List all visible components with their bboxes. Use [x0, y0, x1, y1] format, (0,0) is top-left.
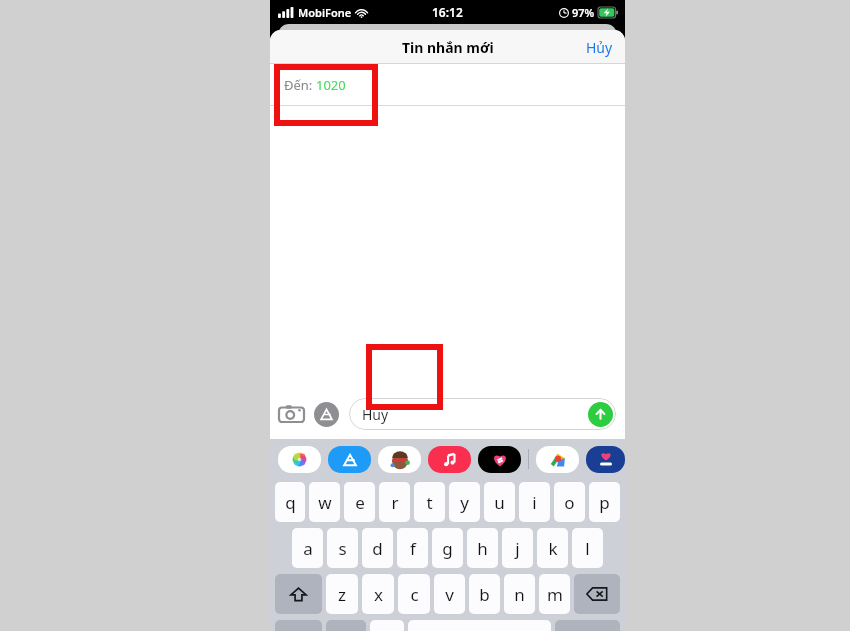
staticText: l	[585, 537, 590, 560]
staticText: r	[391, 491, 399, 514]
staticText: Tin nhắn mới	[402, 38, 494, 57]
staticText: t	[426, 491, 433, 514]
button[interactable]: f	[397, 528, 428, 568]
staticText: g	[442, 537, 453, 560]
staticText: y	[460, 491, 469, 514]
button[interactable]: Backspace	[574, 574, 620, 614]
button[interactable]: appstore	[328, 446, 371, 473]
staticText: f	[410, 537, 416, 560]
staticText: Đến:	[284, 76, 316, 94]
button[interactable]: Numbers	[275, 620, 322, 631]
staticText: Huy	[362, 405, 389, 424]
staticText: o	[564, 491, 575, 514]
staticText: 1020	[316, 76, 346, 94]
button[interactable]: c	[398, 574, 430, 614]
button[interactable]: Hủy	[574, 32, 625, 63]
button[interactable]: s	[327, 528, 358, 568]
button[interactable]: App Store	[314, 402, 339, 427]
button[interactable]: Dictation	[370, 620, 404, 631]
button[interactable]: k	[537, 528, 568, 568]
button[interactable]: Huy	[349, 398, 616, 430]
button[interactable]: p	[589, 482, 620, 522]
button[interactable]: Shift	[275, 574, 322, 614]
button[interactable]: u	[484, 482, 515, 522]
button[interactable]: Send	[588, 402, 613, 427]
button[interactable]: dấu cách	[408, 620, 551, 631]
staticText: m	[547, 583, 563, 606]
button[interactable]: o	[554, 482, 585, 522]
button[interactable]: h	[467, 528, 498, 568]
button[interactable]: maps	[536, 446, 579, 473]
button[interactable]: t	[414, 482, 445, 522]
button[interactable]: fitness	[478, 446, 521, 473]
button[interactable]: a	[292, 528, 323, 568]
staticText: x	[374, 583, 383, 606]
button[interactable]: m	[539, 574, 570, 614]
button[interactable]: y	[449, 482, 480, 522]
button[interactable]: photos	[278, 446, 321, 473]
button[interactable]: Language	[326, 620, 366, 631]
staticText: k	[548, 537, 558, 560]
button[interactable]: q	[275, 482, 305, 522]
button[interactable]: e	[344, 482, 375, 522]
staticText: 16:12	[432, 4, 463, 20]
staticText: b	[479, 583, 490, 606]
button[interactable]: w	[309, 482, 340, 522]
button[interactable]: v	[434, 574, 465, 614]
staticText: MobiFone	[298, 5, 352, 20]
button[interactable]: music	[428, 446, 471, 473]
staticText: e	[355, 491, 365, 514]
staticText: z	[338, 583, 346, 606]
staticText: j	[515, 537, 520, 560]
staticText: v	[445, 583, 454, 606]
staticText: p	[599, 491, 610, 514]
button[interactable]: Đến:	[270, 64, 625, 106]
button[interactable]: Enter	[555, 620, 620, 631]
button[interactable]: i	[519, 482, 550, 522]
button[interactable]: r	[379, 482, 410, 522]
staticText: u	[494, 491, 505, 514]
button[interactable]: b	[469, 574, 500, 614]
button[interactable]: lazada	[586, 446, 625, 473]
button[interactable]: d	[362, 528, 393, 568]
staticText: a	[303, 537, 313, 560]
button[interactable]: g	[432, 528, 463, 568]
staticText: h	[477, 537, 488, 560]
staticText: w	[318, 491, 332, 514]
button[interactable]: Camera	[279, 402, 304, 427]
button[interactable]: x	[362, 574, 394, 614]
button[interactable]: l	[572, 528, 603, 568]
staticText: 97%	[572, 5, 595, 20]
staticText: d	[372, 537, 383, 560]
button[interactable]: z	[326, 574, 358, 614]
staticText: q	[285, 491, 296, 514]
staticText: s	[338, 537, 347, 560]
button[interactable]: n	[504, 574, 535, 614]
button[interactable]: j	[502, 528, 533, 568]
button[interactable]: memoji	[378, 446, 421, 473]
staticText: Hủy	[586, 38, 613, 57]
staticText: c	[410, 583, 419, 606]
staticText: i	[532, 491, 537, 514]
staticText: n	[514, 583, 525, 606]
